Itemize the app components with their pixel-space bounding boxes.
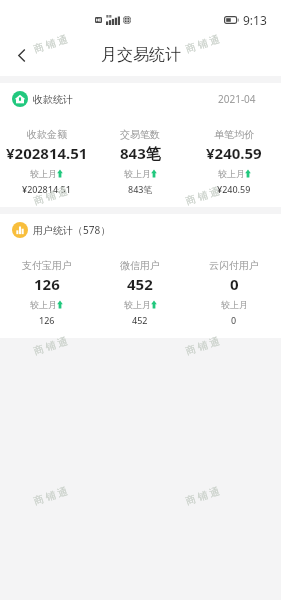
staticText: 收款金额 [27, 128, 67, 141]
staticText: 商铺通 [184, 483, 224, 507]
staticText: 交易笔数 [120, 128, 160, 141]
staticText: 商铺通 [184, 333, 224, 357]
staticText: 商铺通 [184, 183, 224, 207]
staticText: 支付宝用户 [22, 259, 72, 272]
staticText: 商铺通 [32, 183, 72, 207]
button[interactable]: Back [0, 34, 44, 76]
staticText: 收款统计 [33, 93, 73, 106]
staticText: 用户统计（578） [33, 223, 111, 237]
staticText: 月交易统计 [101, 45, 181, 65]
button[interactable]: 收款统计 [0, 83, 281, 115]
staticText: 2021-04 [218, 92, 256, 106]
staticText: 微信用户 [120, 259, 160, 272]
staticText: 较上月 [124, 299, 151, 310]
staticText: 126 [34, 274, 60, 294]
staticText: 商铺通 [32, 31, 72, 55]
staticText: ¥202814.51 [6, 143, 88, 163]
staticText: 452 [127, 274, 153, 294]
staticText: 843笔 [128, 183, 153, 195]
staticText: 较上月 [124, 168, 151, 179]
staticText: 0 [230, 274, 239, 294]
staticText: 商铺通 [32, 483, 72, 507]
staticText: 单笔均价 [214, 128, 254, 141]
staticText: 较上月 [218, 168, 245, 179]
staticText: ¥202814.51 [22, 183, 71, 195]
staticText: 843笔 [120, 143, 161, 163]
staticText: 商铺通 [184, 31, 224, 55]
staticText: 云闪付用户 [209, 259, 259, 272]
staticText: 452 [132, 314, 148, 326]
staticText: 9:13 [243, 12, 267, 28]
staticText: 较上月 [30, 299, 57, 310]
staticText: ¥240.59 [206, 143, 262, 163]
staticText: 126 [39, 314, 55, 326]
button[interactable]: 用户统计（578） [0, 214, 281, 246]
staticText: 商铺通 [32, 333, 72, 357]
staticText: 较上月 [221, 299, 248, 310]
staticText: 0 [231, 314, 237, 326]
staticText: ¥240.59 [217, 183, 251, 195]
staticText: 较上月 [30, 168, 57, 179]
